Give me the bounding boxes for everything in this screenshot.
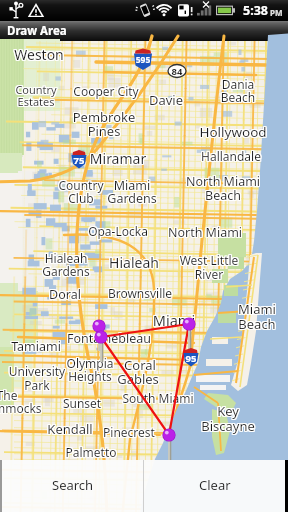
staticText: West Little: [158, 251, 258, 267]
staticText: Kendall: [19, 420, 119, 438]
staticText: Miramar: [69, 148, 169, 167]
staticText: Olympia: [40, 354, 140, 370]
staticText: Coral: [90, 356, 190, 374]
staticText: Sunset: [33, 396, 133, 412]
staticText: Hialeah: [17, 249, 117, 265]
staticText: Hialeah: [84, 252, 184, 271]
staticText: Sunset: [32, 396, 132, 412]
staticText: Fontainebleau: [60, 331, 160, 348]
staticText: Miami: [123, 311, 223, 331]
staticText: Fontainebleau: [59, 330, 159, 347]
staticText: Gardens: [82, 190, 182, 207]
staticText: Beach: [208, 315, 288, 333]
staticText: Key: [177, 403, 277, 421]
staticText: Hialeah: [15, 251, 115, 267]
staticText: Club: [30, 191, 130, 207]
staticText: Park: [0, 377, 86, 393]
staticText: Doral: [15, 286, 115, 303]
staticText: Park: [0, 378, 88, 394]
staticText: Pembroke: [53, 108, 153, 126]
staticText: Miramar: [67, 148, 167, 167]
button[interactable]: Search: [2, 460, 143, 512]
staticText: Heights: [40, 367, 140, 383]
staticText: Miami: [207, 299, 288, 317]
staticText: Olympia: [39, 355, 139, 371]
staticText: Coral: [90, 357, 190, 375]
staticText: River: [158, 266, 258, 282]
staticText: Hammocks: [0, 401, 59, 417]
staticText: Country: [31, 176, 131, 192]
staticText: Hammocks: [0, 401, 61, 417]
staticText: Hialeah: [15, 250, 115, 266]
staticText: North Miami: [156, 225, 256, 242]
staticText: Miami: [81, 177, 181, 194]
staticText: Opa-Locka: [67, 222, 167, 238]
staticText: Key: [179, 402, 279, 420]
staticText: Key: [177, 402, 277, 420]
staticText: Heights: [39, 369, 139, 385]
staticText: Draw Area: [7, 23, 67, 39]
staticText: Dania: [188, 75, 288, 91]
staticText: Beach: [207, 315, 288, 333]
staticText: Hialeah: [83, 254, 183, 273]
staticText: Brownsville: [89, 285, 189, 301]
staticText: Cooper City: [57, 84, 157, 100]
staticText: Cooper City: [56, 84, 156, 100]
staticText: Estates: [0, 94, 86, 109]
staticText: Doral: [16, 287, 116, 304]
staticText: The: [0, 387, 56, 403]
staticText: Olympia: [40, 356, 140, 372]
staticText: Tamiami: [0, 338, 85, 355]
staticText: Beach: [173, 187, 273, 204]
staticText: Biscayne: [178, 417, 278, 435]
staticText: Hallandale: [182, 148, 282, 164]
staticText: Gables: [89, 370, 189, 388]
staticText: Miami: [208, 299, 288, 317]
staticText: Doral: [15, 285, 115, 302]
staticText: Hialeah: [85, 254, 185, 273]
staticText: Hallandale: [181, 147, 281, 163]
staticText: Weston: [0, 45, 90, 64]
staticText: Doral: [15, 287, 115, 304]
staticText: Sunset: [31, 394, 131, 410]
staticText: Pembroke: [53, 107, 153, 125]
staticText: Gardens: [83, 191, 183, 208]
staticText: Doral: [14, 285, 114, 302]
staticText: Miami: [206, 301, 288, 319]
staticText: Estates: [0, 94, 85, 109]
staticText: Club: [30, 190, 130, 206]
staticText: Palmetto: [41, 444, 141, 460]
staticText: West Little: [158, 252, 258, 268]
staticText: Hialeah: [16, 249, 116, 265]
staticText: Weston: [0, 44, 89, 63]
staticText: Key: [178, 403, 278, 421]
staticText: Miami: [124, 311, 224, 331]
staticText: Palmetto: [40, 445, 140, 461]
staticText: Country: [0, 81, 86, 96]
staticText: North Miami: [155, 224, 255, 241]
staticText: Tamiami: [0, 338, 87, 355]
staticText: Opa-Locka: [68, 223, 168, 239]
staticText: Tamiami: [0, 337, 85, 354]
staticText: West Little: [160, 253, 260, 269]
staticText: Beach: [206, 315, 288, 333]
staticText: Miami: [208, 301, 288, 319]
staticText: Key: [179, 401, 279, 419]
staticText: Biscayne: [179, 417, 279, 435]
staticText: Davie: [117, 90, 217, 108]
staticText: Sunset: [32, 394, 132, 410]
staticText: Palmetto: [42, 445, 142, 461]
button[interactable]: Clear: [144, 460, 285, 512]
staticText: North Miami: [172, 172, 272, 189]
staticText: University: [0, 364, 86, 380]
staticText: Hialeah: [83, 253, 183, 272]
staticText: Club: [31, 189, 131, 205]
staticText: University: [0, 364, 88, 380]
staticText: Country: [30, 177, 130, 193]
staticText: Weston: [0, 46, 89, 65]
staticText: Estates: [0, 95, 87, 110]
staticText: Biscayne: [177, 416, 277, 434]
staticText: Beach: [207, 314, 288, 332]
staticText: Weston: [0, 44, 90, 63]
staticText: Gables: [87, 369, 187, 387]
